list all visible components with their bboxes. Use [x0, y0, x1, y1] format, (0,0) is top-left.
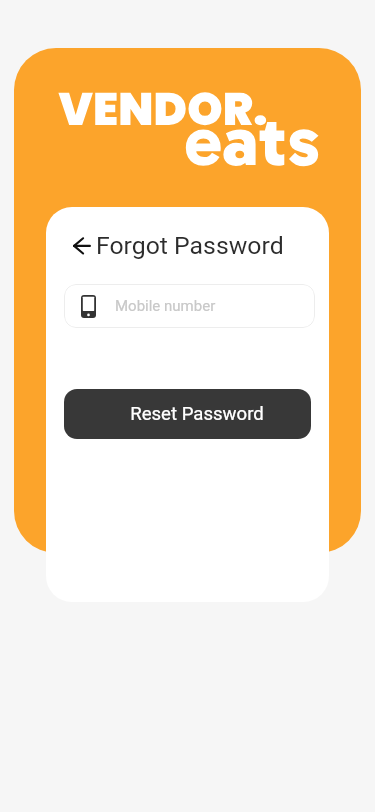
- button[interactable]: Mobile number: [64, 284, 315, 328]
- button[interactable]: Reset Password: [64, 389, 311, 439]
- staticText: Reset Password: [130, 403, 264, 425]
- staticText: Forgot Password: [96, 231, 284, 259]
- button[interactable]: Back: [68, 231, 284, 259]
- staticText: Mobile number: [115, 297, 216, 315]
- other: Back: [68, 231, 96, 259]
